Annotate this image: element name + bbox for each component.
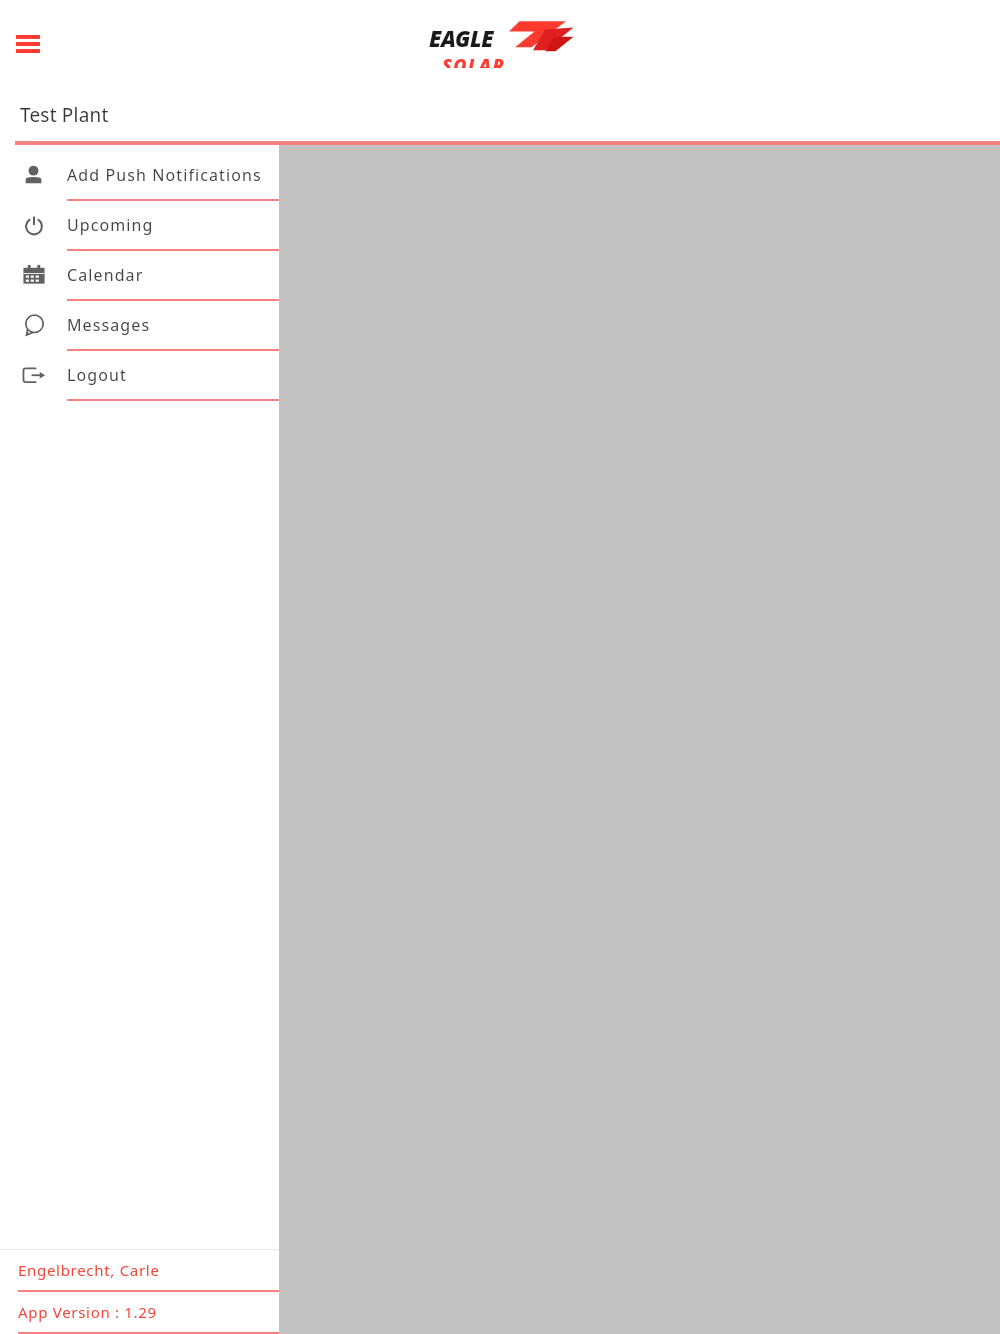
staticText: SOLAR [442,53,506,68]
button[interactable]: Messages [0,301,279,351]
staticText: EAGLE [429,23,494,53]
button[interactable]: Add Push Notifications [0,151,279,201]
staticText: Add Push Notifications [67,164,262,186]
button[interactable]: Calendar [0,251,279,301]
button[interactable]: Upcoming [0,201,279,251]
staticText: Upcoming [67,214,154,236]
staticText: Test Plant [20,102,109,128]
staticText: App Version : 1.29 [18,1302,157,1322]
button[interactable]: Logout [0,351,279,401]
staticText: Messages [67,314,151,336]
staticText: Logout [67,364,127,386]
staticText: Calendar [67,264,144,286]
button[interactable]: App Version : 1.29 [0,1292,279,1334]
button[interactable]: Open navigation menu [6,22,50,66]
staticText: Engelbrecht, Carle [18,1260,160,1280]
button[interactable]: Engelbrecht, Carle [0,1250,279,1292]
